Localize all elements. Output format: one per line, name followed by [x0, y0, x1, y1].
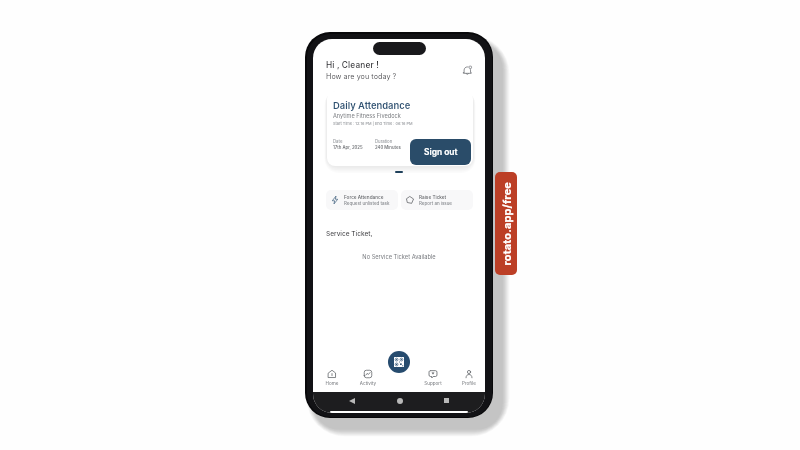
staticText: Sign out: [424, 147, 458, 157]
staticText: Daily Attendance: [333, 100, 411, 111]
button[interactable]: Sign out: [410, 139, 471, 165]
staticText: Activity: [356, 381, 380, 387]
button[interactable]: Force Attendance: [326, 190, 398, 210]
staticText: Hi , Cleaner !: [326, 60, 379, 70]
staticText: 17th Apr, 2025: [333, 145, 363, 150]
button[interactable]: rotato.app/free: [495, 172, 517, 275]
staticText: Start Time : 12:16 PM | End Time : 06:16…: [333, 121, 413, 126]
staticText: No Service Ticket Available: [313, 253, 485, 260]
button[interactable]: Daily Attendance: [327, 91, 473, 166]
staticText: Request unlisted task: [344, 201, 390, 206]
staticText: Home: [320, 381, 344, 387]
button[interactable]: Notifications: [459, 62, 475, 78]
staticText: Duration: [375, 139, 393, 144]
staticText: Report an issue: [419, 201, 452, 206]
staticText: Force Attendance: [344, 194, 384, 200]
staticText: Support: [421, 381, 445, 387]
button[interactable]: Home: [320, 369, 344, 387]
staticText: Profile: [457, 381, 481, 387]
staticText: Raise Ticket: [419, 194, 447, 200]
staticText: 240 Minutes: [375, 145, 401, 150]
button[interactable]: Back: [346, 395, 357, 406]
staticText: Anytime Fitness Fivedock: [333, 113, 401, 120]
button[interactable]: Support: [421, 369, 445, 387]
staticText: Service Ticket,: [326, 230, 373, 238]
staticText: How are you today ?: [326, 72, 397, 81]
button[interactable]: Recent apps: [441, 395, 452, 406]
button[interactable]: Home: [394, 395, 405, 406]
button[interactable]: Activity: [356, 369, 380, 387]
button[interactable]: Scan QR code: [388, 351, 410, 373]
button[interactable]: Raise Ticket: [401, 190, 473, 210]
staticText: Date: [333, 139, 343, 144]
staticText: rotato.app/free: [499, 181, 512, 265]
button[interactable]: Profile: [457, 369, 481, 387]
